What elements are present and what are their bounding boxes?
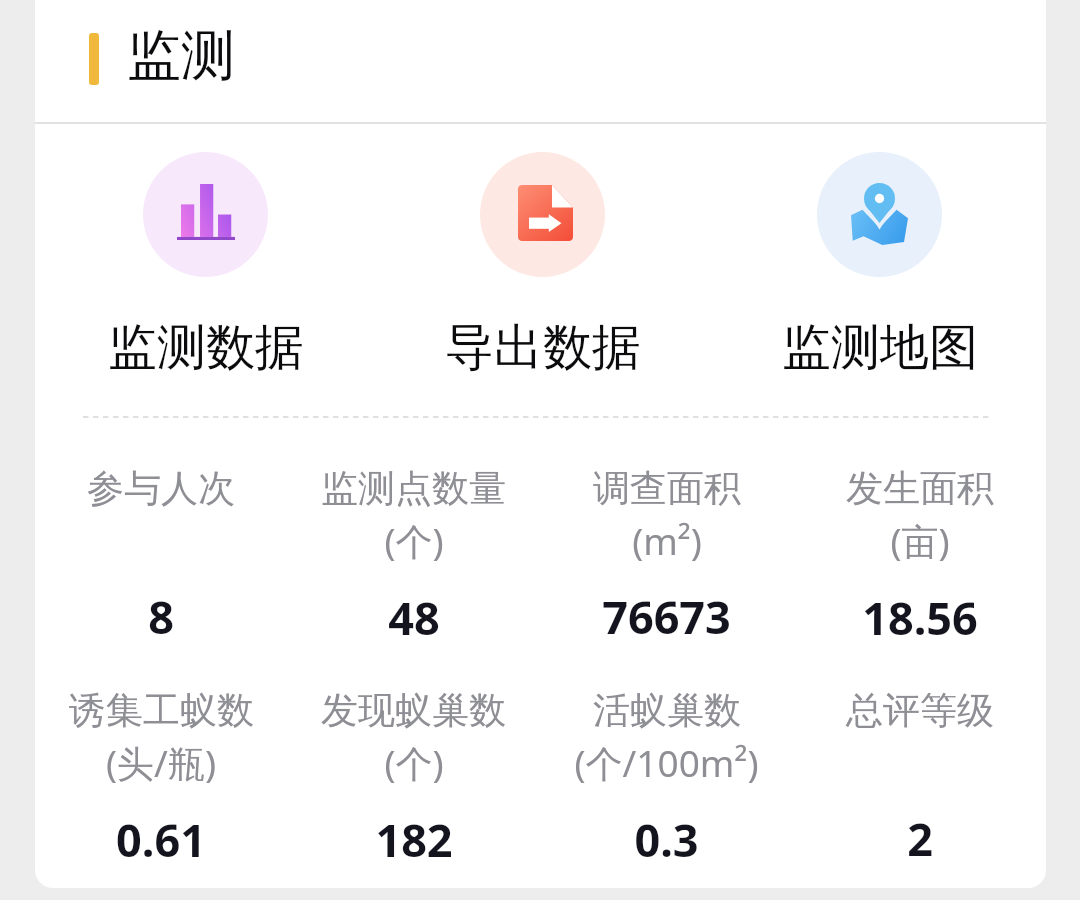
staticText: 调查面积 bbox=[593, 465, 741, 512]
other: 导出数据 bbox=[480, 152, 605, 277]
staticText: 总评等级 bbox=[846, 687, 994, 734]
staticText: (亩) bbox=[890, 515, 950, 566]
staticText: 导出数据 bbox=[445, 317, 641, 379]
staticText: 0.61 bbox=[116, 809, 206, 870]
staticText: 监测地图 bbox=[782, 317, 978, 379]
staticText: 监测点数量 bbox=[321, 465, 506, 512]
staticText: 48 bbox=[388, 587, 440, 648]
staticText: 监测 bbox=[127, 22, 235, 90]
staticText: 发生面积 bbox=[846, 465, 994, 512]
button[interactable]: 监测地图 bbox=[711, 152, 1046, 410]
staticText: (m²) bbox=[632, 515, 702, 565]
button[interactable]: 导出数据 bbox=[374, 152, 711, 410]
staticText: 发现蚁巢数 bbox=[321, 687, 506, 734]
staticText: (个) bbox=[384, 515, 444, 566]
staticText: 诱集工蚁数 bbox=[69, 687, 254, 734]
staticText: 2 bbox=[907, 808, 933, 869]
staticText: 18.56 bbox=[862, 587, 978, 648]
staticText: 活蚁巢数 bbox=[593, 687, 741, 734]
button[interactable]: 监测数据 bbox=[37, 152, 374, 410]
staticText: 182 bbox=[375, 809, 453, 870]
staticText: 8 bbox=[148, 586, 174, 647]
staticText: (个/100m²) bbox=[574, 737, 759, 788]
staticText: (头/瓶) bbox=[106, 737, 216, 788]
staticText: 参与人次 bbox=[87, 465, 235, 512]
staticText: 76673 bbox=[602, 586, 731, 647]
staticText: (个) bbox=[384, 737, 444, 788]
other: 监测数据 bbox=[143, 152, 268, 277]
staticText: 0.3 bbox=[634, 809, 699, 870]
staticText: 监测数据 bbox=[108, 317, 304, 379]
other: 监测地图 bbox=[817, 152, 942, 277]
